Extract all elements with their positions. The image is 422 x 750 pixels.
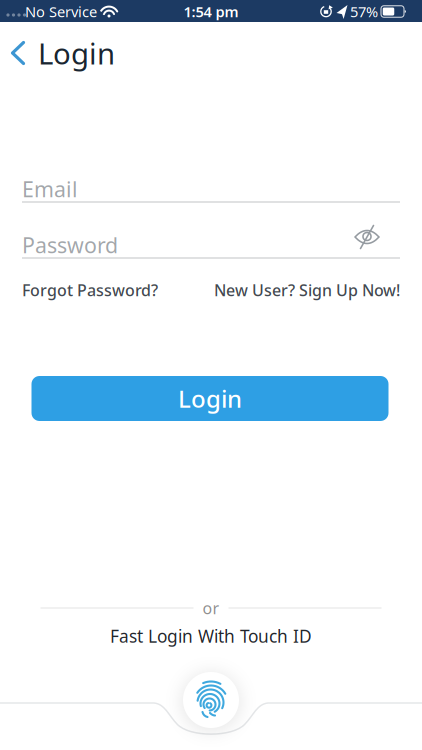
- staticText: 1:54 pm: [183, 2, 238, 21]
- button[interactable]: Login: [11, 33, 415, 72]
- button[interactable]: [352, 224, 382, 250]
- button[interactable]: Login: [31, 376, 388, 421]
- staticText: Password: [22, 231, 118, 259]
- staticText: Login: [178, 383, 242, 414]
- button[interactable]: Email: [22, 175, 400, 203]
- staticText: No Service: [25, 2, 97, 21]
- button[interactable]: [183, 672, 239, 728]
- button[interactable]: Forgot Password?: [22, 279, 158, 301]
- button[interactable]: Password: [22, 231, 400, 259]
- staticText: Login: [38, 33, 115, 72]
- button[interactable]: New User? Sign Up Now!: [214, 279, 400, 301]
- staticText: Email: [22, 175, 78, 203]
- staticText: or: [202, 597, 219, 619]
- staticText: Fast Login With Touch ID: [110, 624, 312, 647]
- staticText: 57%: [350, 2, 378, 21]
- staticText: Forgot Password?: [22, 279, 158, 301]
- staticText: New User? Sign Up Now!: [214, 279, 400, 301]
